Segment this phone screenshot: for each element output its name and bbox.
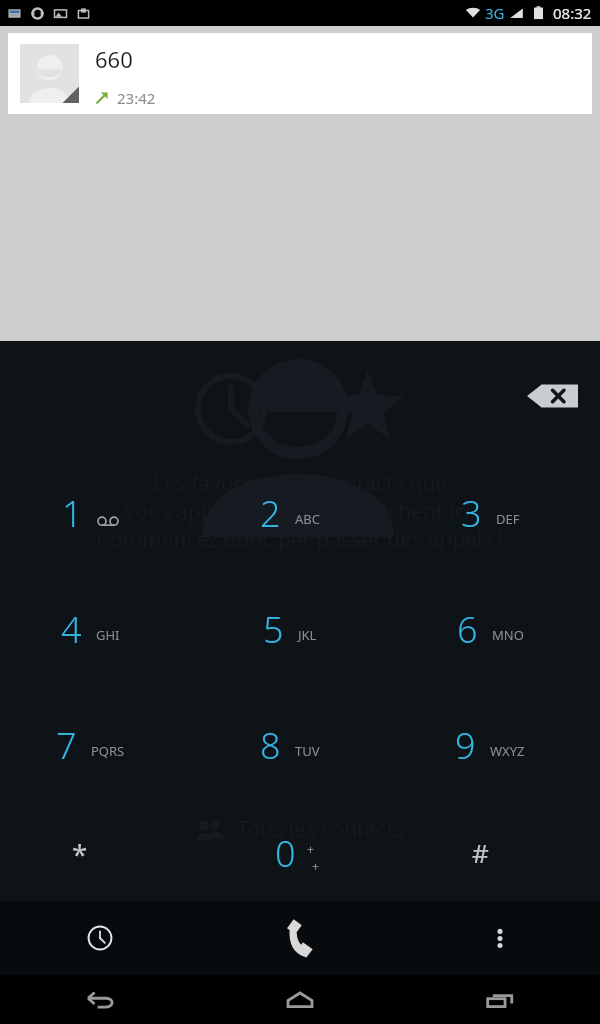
staticText: 7 [56, 721, 77, 765]
button[interactable]: 4 [0, 605, 200, 649]
button[interactable]: 8 [200, 721, 400, 765]
button[interactable]: Recents [400, 975, 600, 1024]
staticText: 2 [260, 489, 281, 533]
button[interactable]: * [0, 829, 200, 875]
staticText: 5 [263, 605, 284, 649]
button[interactable]: 660 [8, 33, 592, 114]
staticText: + [312, 858, 319, 874]
button[interactable]: 0 [200, 829, 400, 875]
staticText: MNO [492, 626, 524, 644]
staticText: JKL [298, 626, 317, 644]
staticText: 9 [455, 721, 476, 765]
staticText: PQRS [91, 742, 125, 760]
button[interactable]: 6 [400, 605, 600, 649]
button[interactable]: Dialpad [200, 901, 400, 975]
button[interactable]: Back [0, 975, 200, 1024]
button[interactable]: 7 [0, 721, 200, 765]
staticText: + [307, 841, 314, 857]
staticText: Les favoris et les contacts que vous app… [96, 469, 504, 553]
staticText: 660 [95, 44, 133, 74]
staticText: 23:42 [117, 88, 156, 108]
staticText: 08:32 [553, 3, 592, 23]
button[interactable]: 3 [400, 489, 600, 533]
button[interactable]: 9 [400, 721, 600, 765]
staticText: 1 [62, 489, 83, 533]
staticText: ABC [295, 510, 320, 528]
button[interactable]: 5 [200, 605, 400, 649]
staticText: WXYZ [490, 742, 525, 760]
button[interactable]: # [400, 829, 600, 875]
staticText: DEF [496, 510, 520, 528]
staticText: # [472, 835, 489, 870]
staticText: 8 [260, 721, 281, 765]
staticText: 3G [485, 3, 505, 23]
staticText: GHI [96, 626, 120, 644]
staticText: * [72, 835, 88, 873]
button[interactable]: More options [400, 901, 600, 975]
staticText: 6 [457, 605, 478, 649]
button[interactable]: 1 [0, 489, 200, 533]
button[interactable]: Backspace [526, 381, 578, 411]
staticText: 4 [61, 605, 82, 649]
button[interactable]: Home [200, 975, 400, 1024]
button[interactable]: Recent calls [0, 901, 200, 975]
staticText: Tous les contacts [237, 815, 405, 844]
staticText: TUV [295, 742, 320, 760]
button[interactable]: 2 [200, 489, 400, 533]
staticText: 3 [461, 489, 482, 533]
staticText: 0 [275, 829, 296, 875]
